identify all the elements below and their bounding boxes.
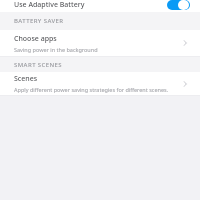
staticText: Saving power in the background	[14, 46, 98, 53]
other: Scenes	[178, 77, 192, 91]
other: Choose apps	[178, 36, 192, 50]
staticText: Choose apps	[14, 34, 57, 44]
staticText: BATTERY SAVER	[14, 17, 64, 25]
staticText: Use Adaptive Battery	[14, 0, 85, 10]
button[interactable]: Scenes	[0, 72, 200, 95]
staticText: Scenes	[14, 74, 38, 84]
staticText: SMART SCENES	[14, 61, 63, 69]
button[interactable]: Choose apps	[0, 30, 200, 56]
button[interactable]: Use Adaptive Battery	[0, 0, 200, 12]
staticText: Apply different power saving strategies …	[14, 86, 169, 93]
button[interactable]: Use Adaptive Battery toggle	[167, 0, 190, 10]
